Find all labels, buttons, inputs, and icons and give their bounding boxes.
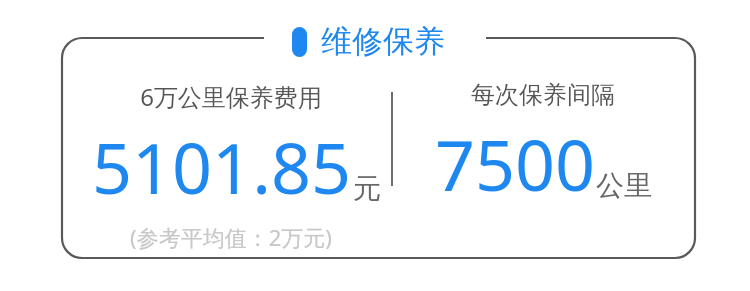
staticText: 公里 bbox=[596, 168, 652, 203]
staticText: 维修保养 bbox=[321, 22, 445, 61]
button[interactable]: 每次保养间隔 bbox=[415, 80, 671, 211]
staticText: 元 bbox=[353, 171, 370, 206]
staticText: 5101.85 bbox=[92, 119, 351, 214]
staticText: 7500 bbox=[435, 116, 596, 211]
button[interactable]: 6万公里保养费用 bbox=[92, 80, 370, 252]
other: 维修保养标记 bbox=[292, 27, 307, 57]
staticText: 6万公里保养费用 bbox=[140, 80, 322, 113]
staticText: (参考平均值：2万元) bbox=[130, 222, 332, 252]
staticText: 每次保养间隔 bbox=[471, 80, 615, 110]
button[interactable]: 维修保养标记 bbox=[292, 22, 445, 61]
